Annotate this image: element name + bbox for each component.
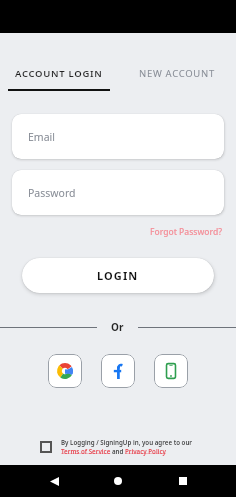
staticText: By Logging / SigningUp in, you agree to …: [61, 438, 193, 446]
button[interactable]: Sign in with phone number: [154, 354, 188, 388]
button[interactable]: Home: [107, 470, 129, 492]
button[interactable]: Recent apps: [172, 470, 194, 492]
button[interactable]: Sign in with Google: [48, 354, 82, 388]
button[interactable]: LOGIN: [22, 258, 214, 293]
staticText: Or: [111, 320, 124, 334]
staticText: ACCOUNT LOGIN: [15, 67, 103, 80]
staticText: Forgot Password?: [150, 226, 222, 238]
button[interactable]: Password: [12, 170, 224, 215]
button[interactable]: Back: [43, 470, 65, 492]
button[interactable]: ACCOUNT LOGIN: [0, 67, 118, 91]
button[interactable]: Sign in with Facebook: [101, 354, 135, 388]
button[interactable]: Terms of Service and Privacy Policy: [61, 447, 166, 455]
staticText: Email: [28, 130, 55, 144]
staticText: Password: [28, 186, 76, 200]
staticText: LOGIN: [97, 268, 139, 283]
staticText: NEW ACCOUNT: [139, 67, 215, 80]
button[interactable]: NEW ACCOUNT: [118, 67, 236, 91]
button[interactable]: Email: [12, 114, 224, 159]
button[interactable]: Forgot Password?: [150, 224, 236, 240]
button[interactable]: Accept terms checkbox: [40, 441, 52, 453]
